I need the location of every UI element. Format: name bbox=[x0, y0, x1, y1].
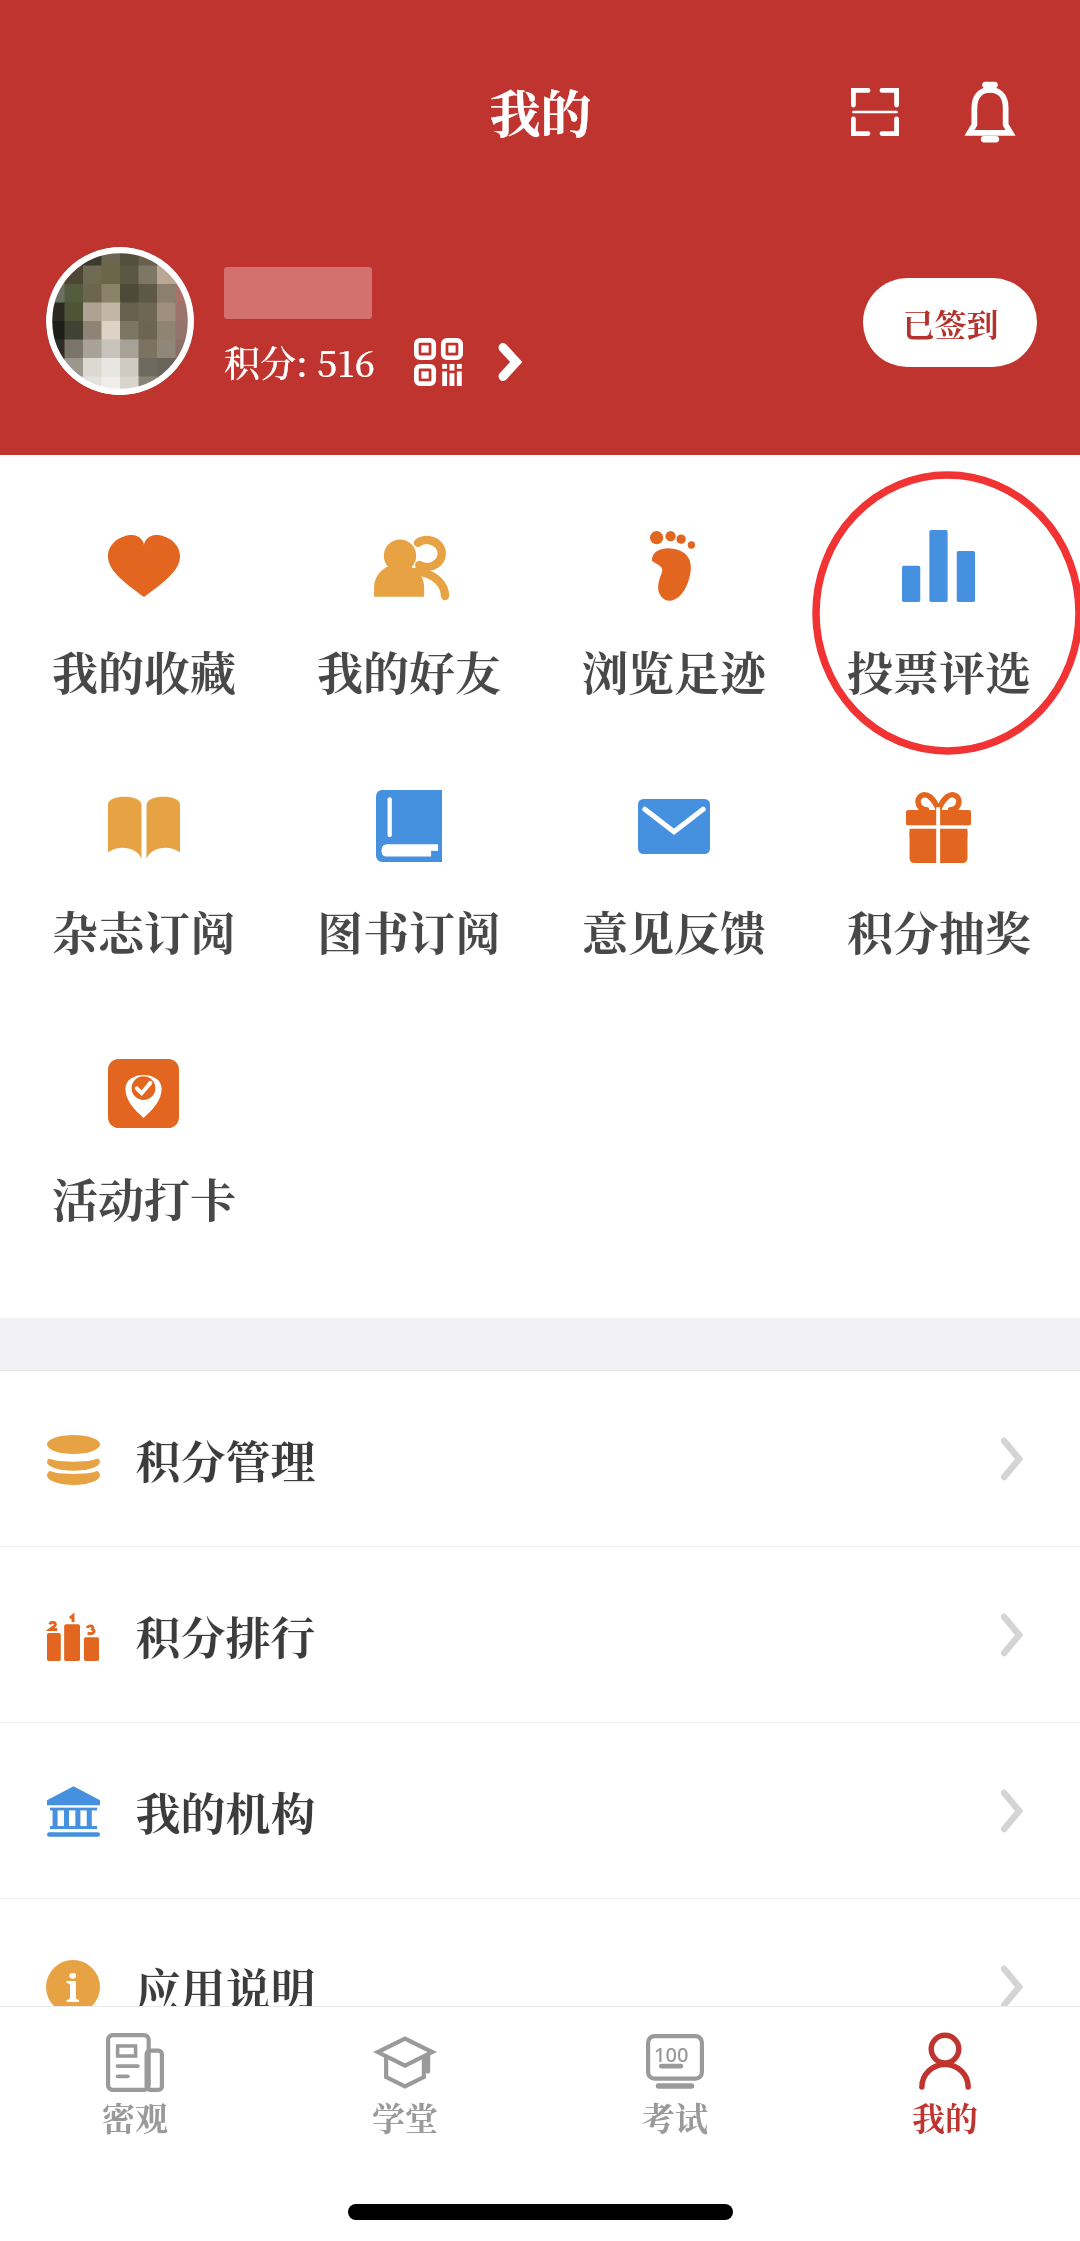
button[interactable]: 学堂 bbox=[270, 2031, 540, 2140]
button[interactable]: 积分排行 bbox=[0, 1547, 1080, 1723]
staticText: i bbox=[66, 1961, 80, 2013]
staticText: 我的 bbox=[912, 2093, 978, 2140]
button[interactable]: 投票评选 bbox=[806, 526, 1071, 703]
button[interactable]: 积分抽奖 bbox=[806, 786, 1071, 963]
staticText: 我的 bbox=[489, 74, 592, 147]
staticText: 已签到 bbox=[902, 300, 999, 346]
staticText: 图书订阅 bbox=[317, 897, 501, 963]
button[interactable]: 我的收藏 bbox=[11, 526, 276, 703]
button[interactable]: 积分管理 bbox=[0, 1371, 1080, 1547]
button[interactable]: Scan QR code bbox=[831, 68, 919, 156]
staticText: 积分管理 bbox=[135, 1427, 316, 1492]
button[interactable]: My QR code bbox=[407, 331, 469, 393]
staticText: 密观 bbox=[102, 2093, 168, 2140]
staticText: 意见反馈 bbox=[582, 897, 766, 963]
staticText: 应用说明 bbox=[135, 1955, 316, 2020]
button[interactable]: 我的好友 bbox=[276, 526, 541, 703]
staticText: 我的机构 bbox=[135, 1779, 316, 1844]
button[interactable]: 意见反馈 bbox=[541, 786, 806, 963]
staticText: 我的收藏 bbox=[52, 637, 236, 703]
staticText: 投票评选 bbox=[847, 637, 1031, 703]
button[interactable]: 活动打卡 bbox=[11, 1053, 276, 1230]
button[interactable]: Profile photo bbox=[46, 247, 194, 395]
staticText: 杂志订阅 bbox=[52, 897, 236, 963]
staticText: 我的好友 bbox=[317, 637, 501, 703]
button[interactable]: 我的机构 bbox=[0, 1723, 1080, 1899]
staticText: 考试 bbox=[642, 2093, 708, 2140]
button[interactable]: 100 bbox=[540, 2031, 810, 2140]
button[interactable]: 已签到 bbox=[863, 278, 1037, 367]
staticText: 积分抽奖 bbox=[847, 897, 1031, 963]
button[interactable]: 浏览足迹 bbox=[541, 526, 806, 703]
button[interactable]: 密观 bbox=[0, 2031, 270, 2140]
staticText: 活动打卡 bbox=[52, 1164, 236, 1230]
button[interactable]: i bbox=[0, 1899, 1080, 2075]
button[interactable]: 图书订阅 bbox=[276, 786, 541, 963]
staticText: 学堂 bbox=[372, 2093, 438, 2140]
staticText: 浏览足迹 bbox=[582, 637, 766, 703]
staticText: 积分排行 bbox=[135, 1603, 316, 1668]
staticText: 积分: 516 bbox=[224, 336, 375, 388]
button[interactable]: 我的 bbox=[810, 2031, 1080, 2140]
staticText: 100 bbox=[654, 2041, 689, 2068]
button[interactable]: Notifications bbox=[946, 68, 1034, 156]
button[interactable]: 杂志订阅 bbox=[11, 786, 276, 963]
